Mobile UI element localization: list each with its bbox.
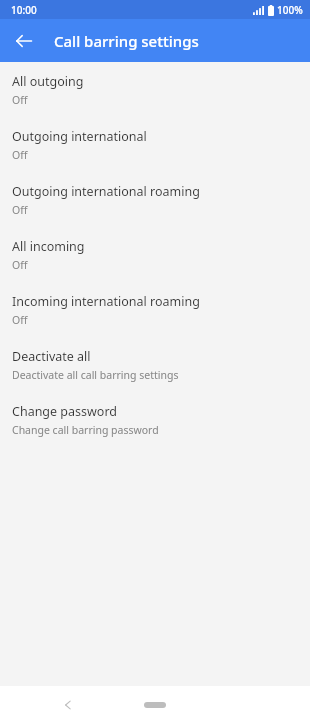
button[interactable]: Deactivate all bbox=[0, 337, 310, 392]
staticText: Deactivate all bbox=[12, 348, 91, 365]
staticText: Off bbox=[12, 203, 28, 217]
staticText: 100% bbox=[277, 3, 303, 17]
staticText: Call barring settings bbox=[54, 31, 199, 51]
button[interactable]: All outgoing bbox=[0, 62, 310, 117]
button[interactable]: Home bbox=[133, 695, 177, 715]
button[interactable]: Back bbox=[50, 687, 86, 723]
button[interactable]: Change password bbox=[0, 392, 310, 447]
staticText: Off bbox=[12, 258, 28, 272]
button[interactable]: Incoming international roaming bbox=[0, 282, 310, 337]
staticText: Change password bbox=[12, 403, 118, 420]
staticText: Off bbox=[12, 148, 28, 162]
staticText: All outgoing bbox=[12, 73, 84, 90]
button[interactable]: Outgoing international bbox=[0, 117, 310, 172]
staticText: Outgoing international bbox=[12, 128, 147, 145]
button[interactable]: Outgoing international roaming bbox=[0, 172, 310, 227]
button[interactable]: All incoming bbox=[0, 227, 310, 282]
staticText: Off bbox=[12, 93, 28, 107]
staticText: Outgoing international roaming bbox=[12, 183, 200, 200]
staticText: Off bbox=[12, 313, 28, 327]
staticText: Deactivate all call barring settings bbox=[12, 368, 179, 382]
staticText: 10:00 bbox=[11, 3, 37, 17]
button[interactable]: Back bbox=[6, 23, 42, 59]
staticText: Change call barring password bbox=[12, 423, 159, 437]
staticText: All incoming bbox=[12, 238, 85, 255]
staticText: Incoming international roaming bbox=[12, 293, 200, 310]
